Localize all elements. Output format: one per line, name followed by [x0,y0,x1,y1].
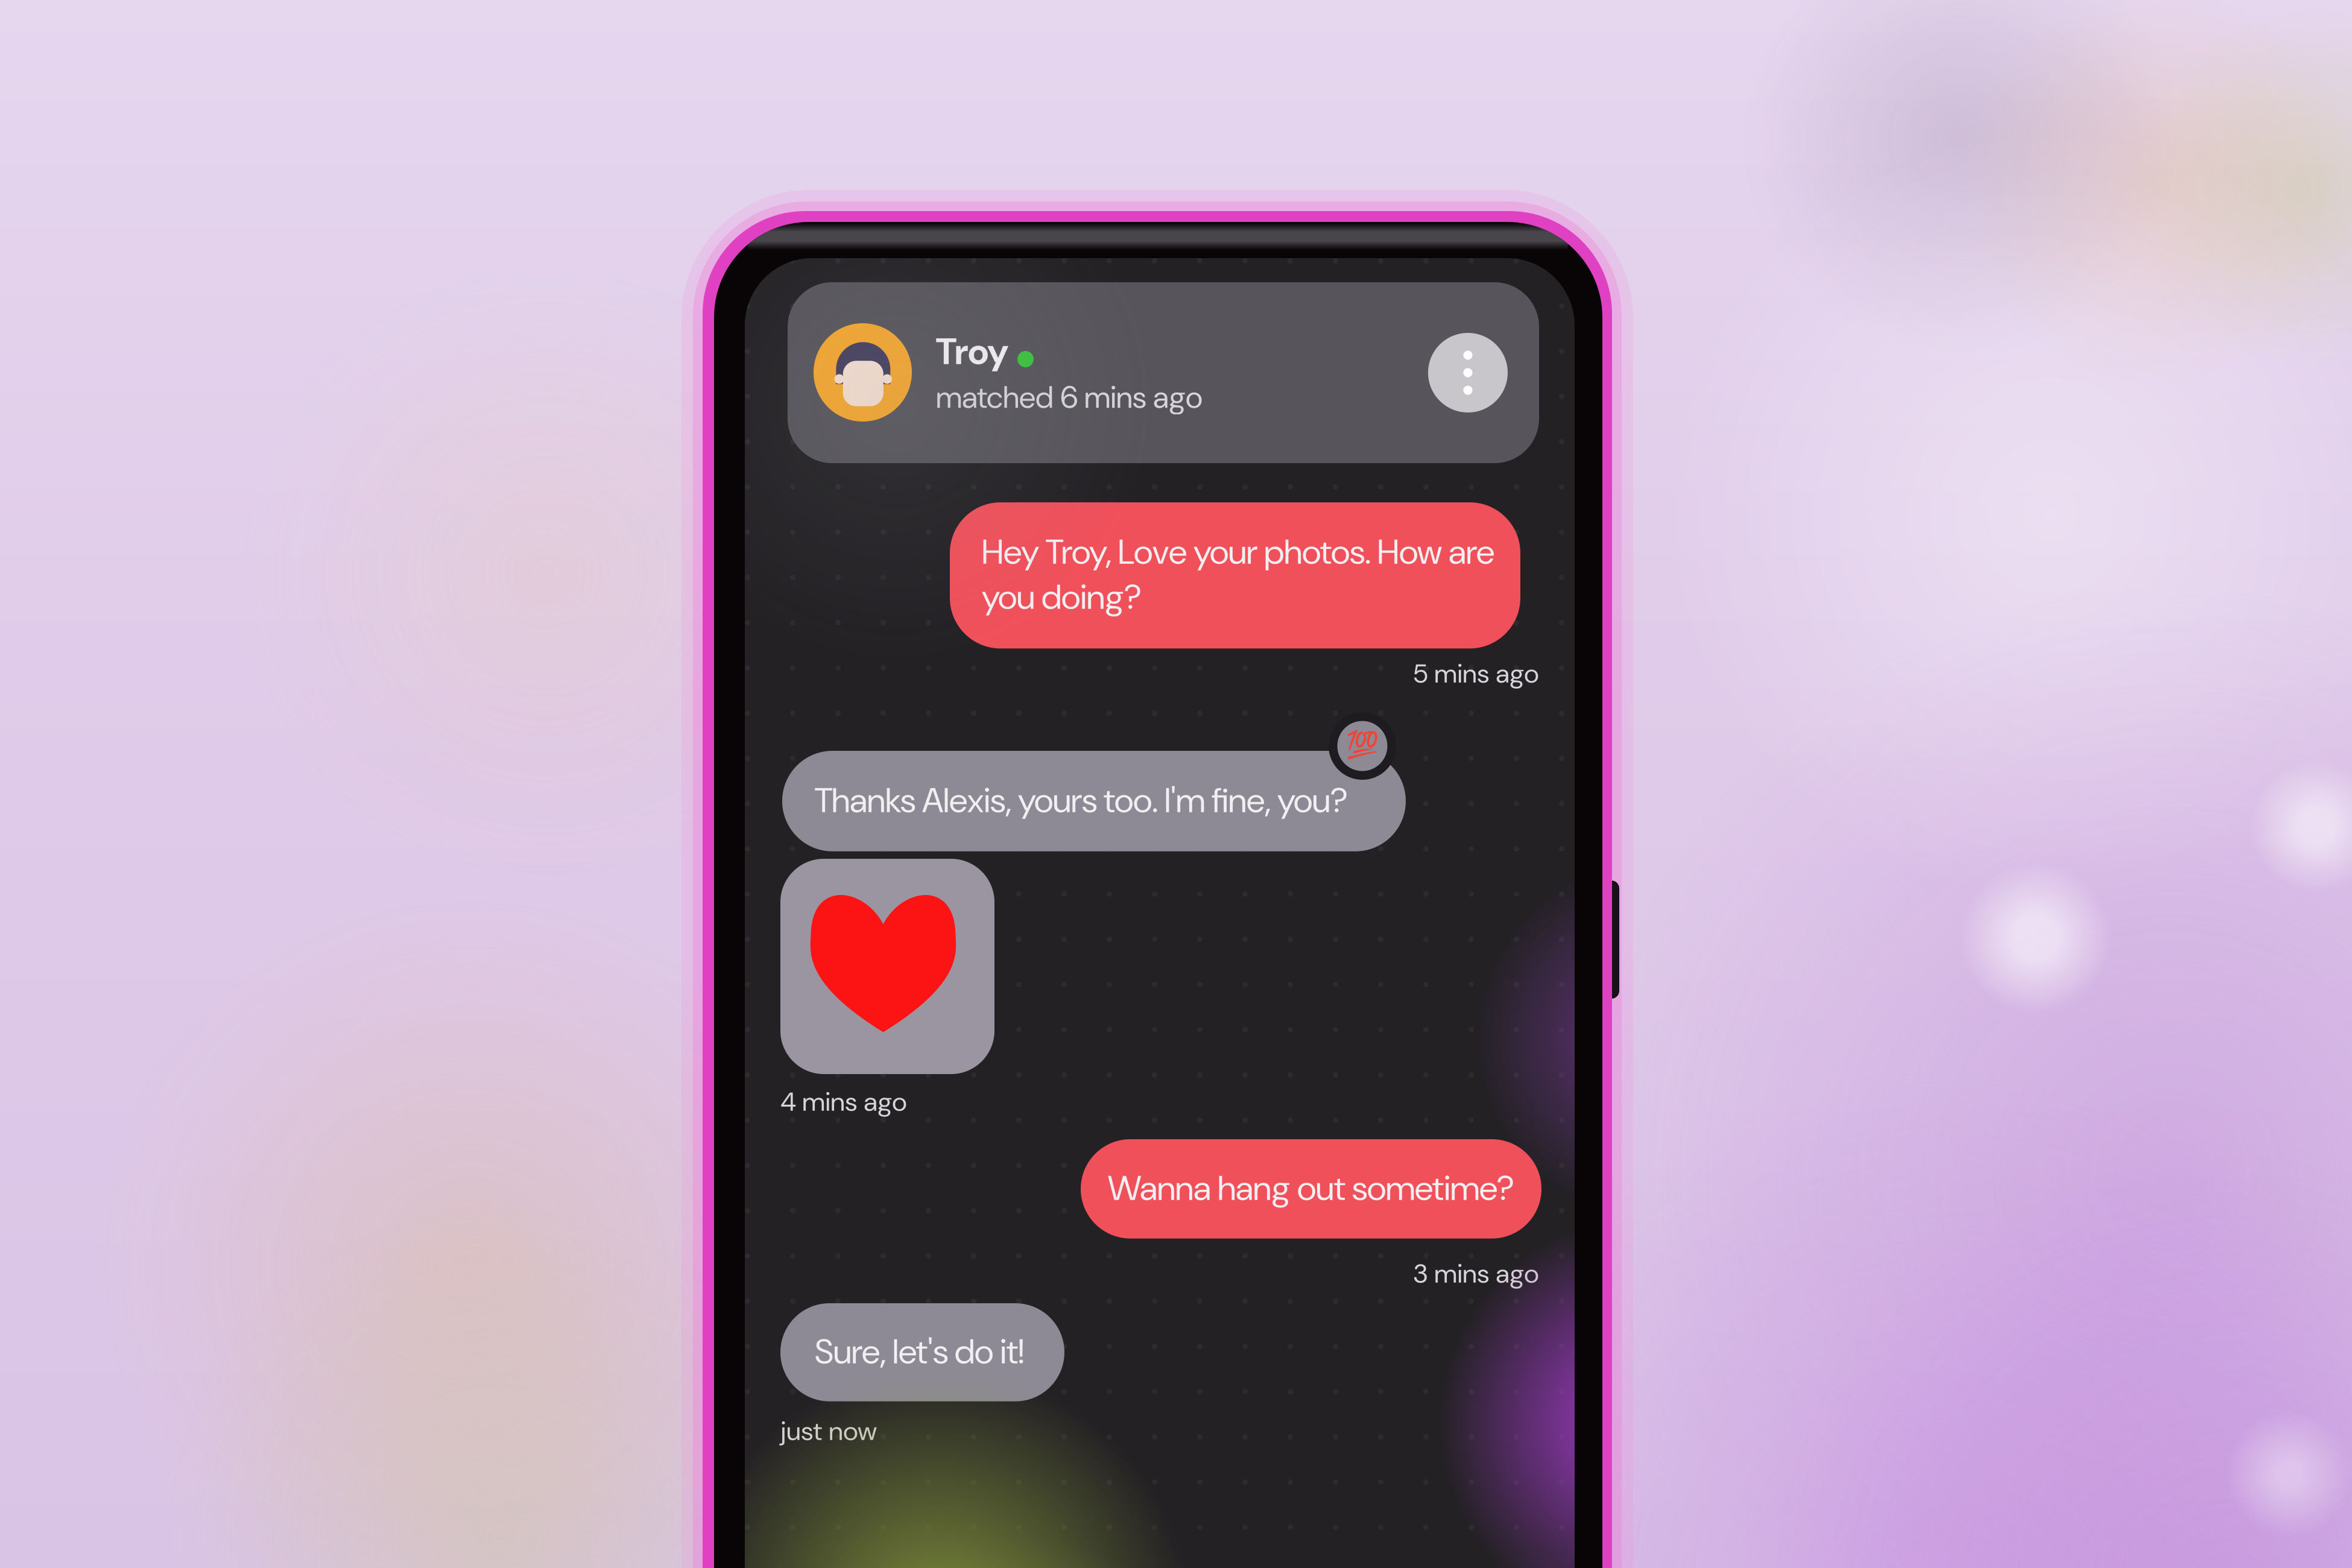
staticText: Sure, let's do it! [815,1329,1024,1374]
button[interactable]: More options [1428,333,1508,413]
staticText: Troy [936,327,1008,376]
staticText: Wanna hang out sometime? [1108,1166,1514,1211]
staticText: just now [780,1414,877,1448]
staticText: matched 6 mins ago [936,378,1203,417]
staticText: 💯 [1346,729,1379,760]
staticText: Thanks Alexis, yours too. I'm fine, you? [815,778,1348,823]
staticText: 5 mins ago [1413,656,1539,691]
staticText: 3 mins ago [1413,1256,1539,1291]
staticText: Hey Troy, Love your photos. How are you … [982,530,1494,620]
button[interactable]: Hundred points reaction [1329,712,1396,780]
button[interactable]: Troy [788,282,1539,463]
staticText: 4 mins ago [780,1084,907,1119]
button[interactable]: Heart sticker [780,859,994,1074]
